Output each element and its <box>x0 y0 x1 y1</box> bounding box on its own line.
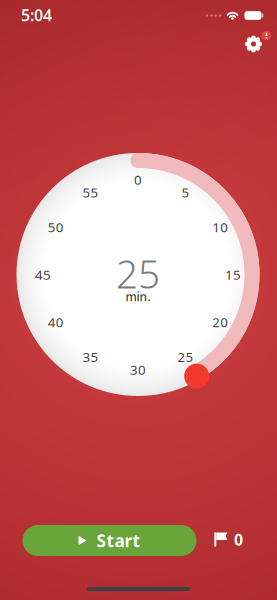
button[interactable]: Settings <box>235 29 271 59</box>
staticText: 50 <box>48 218 64 236</box>
staticText: min. <box>125 288 150 304</box>
staticText: 0 <box>134 171 142 188</box>
staticText: 10 <box>212 218 228 236</box>
button[interactable]: Pomodoro count <box>208 526 248 552</box>
staticText: 20 <box>212 313 228 331</box>
button[interactable]: Start <box>22 525 196 556</box>
staticText: 35 <box>82 348 98 366</box>
staticText: 5:04 <box>21 4 52 26</box>
staticText: 25 <box>116 248 160 299</box>
staticText: 55 <box>82 183 98 201</box>
staticText: 45 <box>35 266 51 283</box>
staticText: 0 <box>234 529 243 550</box>
staticText: 5 <box>181 183 189 201</box>
staticText: 40 <box>48 313 64 331</box>
staticText: 30 <box>130 361 146 378</box>
staticText: Start <box>96 529 140 552</box>
staticText: 25 <box>177 348 193 366</box>
staticText: 15 <box>225 266 241 283</box>
